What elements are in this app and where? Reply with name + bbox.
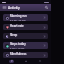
button[interactable]: Profile — [37, 58, 42, 64]
staticText: Mindfulness — [10, 52, 27, 56]
staticText: Steps today — [10, 42, 26, 46]
staticText: Heart rate — [10, 24, 24, 28]
button[interactable]: Steps today — [3, 42, 48, 49]
staticText: 5.2 km · 28 min — [10, 19, 26, 21]
button[interactable]: Search — [44, 5, 49, 10]
button[interactable]: Sleep — [3, 33, 48, 39]
button[interactable]: Morning run — [3, 14, 48, 21]
button[interactable]: Mindfulness — [3, 52, 48, 58]
staticText: Sleep — [10, 33, 18, 37]
button[interactable]: Menu — [2, 5, 7, 10]
button[interactable]: Heart rate — [3, 24, 48, 30]
button[interactable]: Stats — [23, 58, 28, 64]
staticText: Morning run — [10, 14, 27, 18]
button[interactable]: Home — [9, 58, 14, 64]
staticText: Activity — [8, 6, 20, 10]
staticText: 8 420 / 10 000 — [10, 47, 25, 49]
